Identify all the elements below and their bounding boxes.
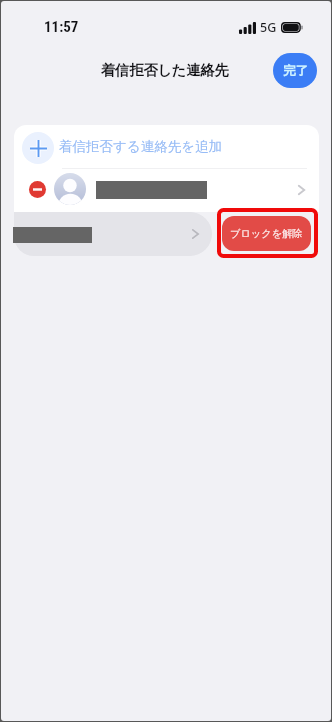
button[interactable]: 着信拒否する連絡先を追加 bbox=[14, 125, 319, 168]
button[interactable]: 完了 bbox=[273, 53, 317, 88]
staticText: 着信拒否する連絡先を追加 bbox=[59, 138, 222, 155]
staticText: 着信拒否した連絡先 bbox=[101, 61, 229, 79]
staticText: 完了 bbox=[283, 63, 308, 79]
button[interactable] bbox=[14, 212, 212, 256]
button[interactable]: ブロックを解除 bbox=[222, 216, 311, 251]
staticText: 5G bbox=[260, 19, 277, 36]
staticText: ブロックを解除 bbox=[230, 227, 303, 240]
staticText: 11:57 bbox=[44, 18, 79, 36]
button[interactable] bbox=[14, 169, 319, 212]
